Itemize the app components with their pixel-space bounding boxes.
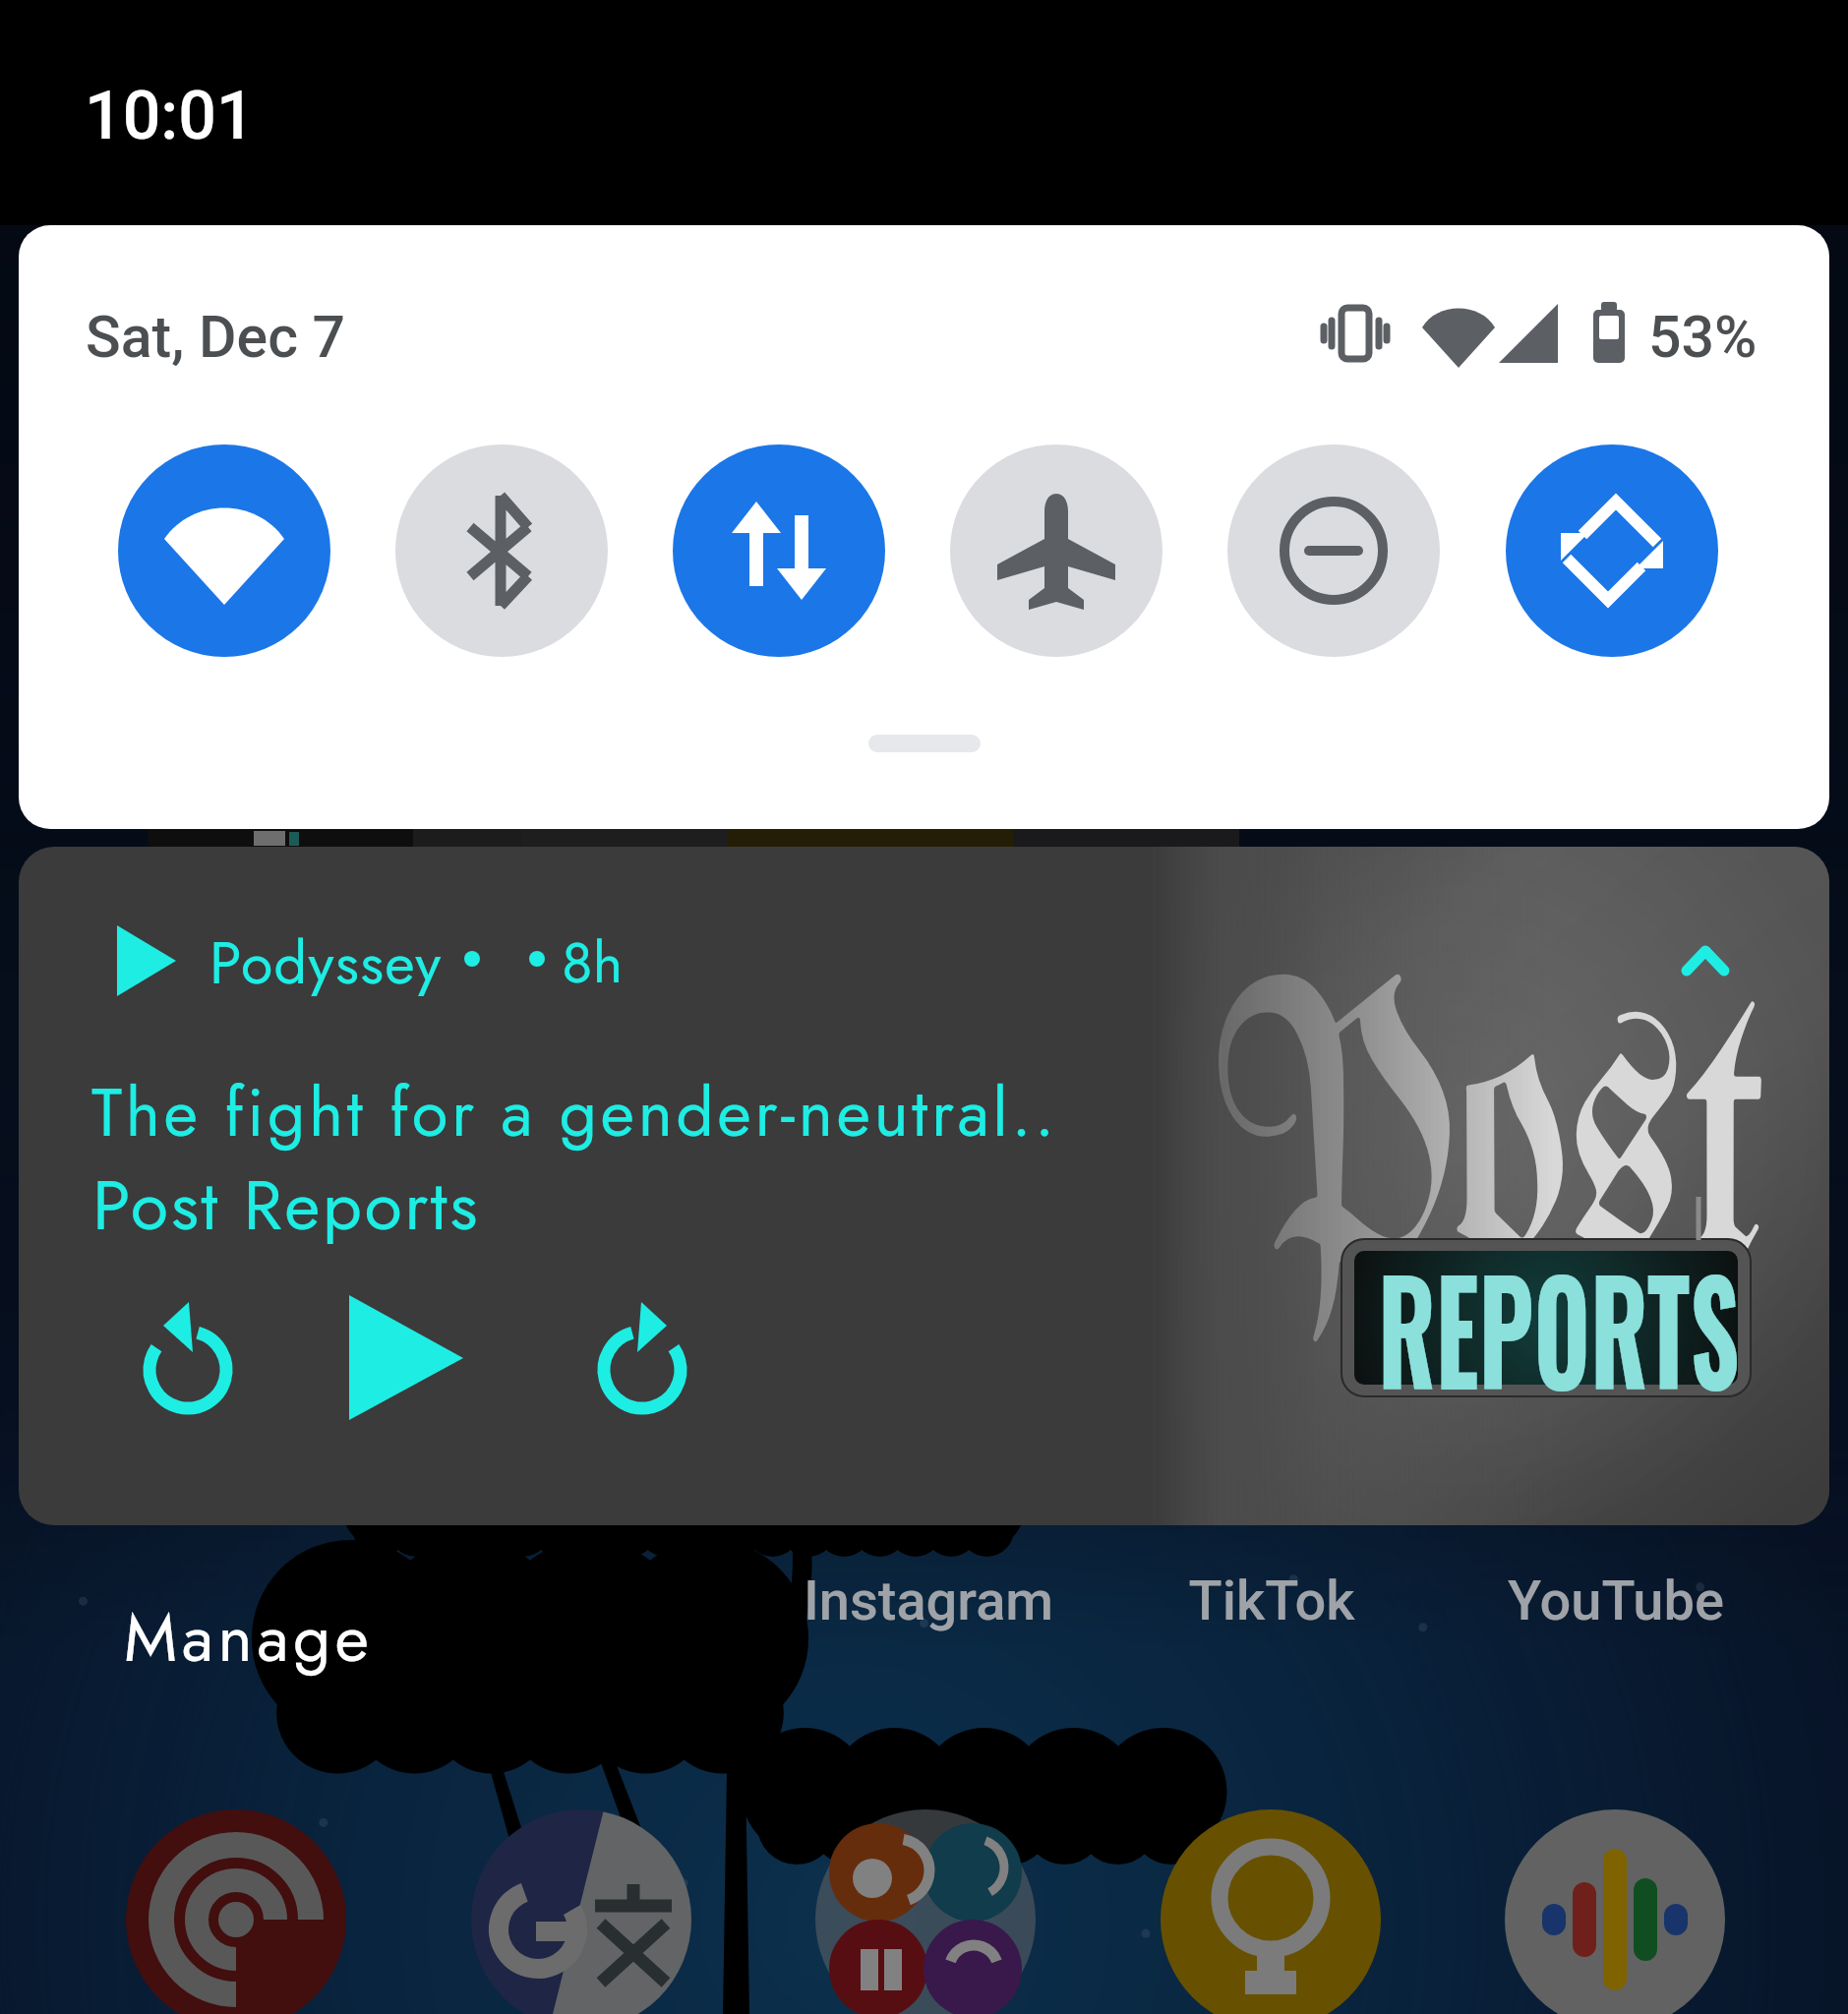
staticText: REPORTS bbox=[1378, 1222, 1740, 1430]
button[interactable]: Collapse notification bbox=[1657, 908, 1752, 1002]
button[interactable]: Instagram bbox=[732, 1569, 1125, 1647]
button[interactable]: Bluetooth bbox=[395, 444, 608, 657]
button[interactable]: YouTube bbox=[1419, 1569, 1813, 1647]
staticText: TikTok bbox=[1075, 1569, 1468, 1633]
button[interactable]: TikTok bbox=[1075, 1569, 1468, 1647]
staticText: The fight for a gender-neutral.. bbox=[91, 1065, 1058, 1160]
button[interactable]: Mobile data bbox=[673, 444, 885, 657]
button[interactable]: Fast forward 30 seconds bbox=[554, 1279, 731, 1456]
staticText: 8h bbox=[562, 921, 624, 1004]
button[interactable]: Auto-rotate bbox=[1506, 444, 1718, 657]
staticText: Post Reports bbox=[92, 1155, 481, 1255]
button[interactable]: Podcast apps folder bbox=[815, 1809, 1036, 2014]
staticText: Instagram bbox=[732, 1569, 1125, 1633]
button[interactable]: Do not disturb bbox=[1227, 444, 1440, 657]
staticText: 53% bbox=[1648, 303, 1758, 371]
staticText: Sat, Dec 7 bbox=[86, 303, 346, 371]
staticText: YouTube bbox=[1419, 1569, 1813, 1633]
button[interactable]: Google Podcasts bbox=[1505, 1809, 1725, 2014]
button[interactable]: Pocket Casts bbox=[126, 1809, 346, 2014]
staticText: Post bbox=[1215, 938, 1767, 1377]
button[interactable]: Rewind 10 seconds bbox=[97, 1279, 274, 1456]
staticText: 10:01 bbox=[85, 77, 255, 155]
button[interactable]: Play bbox=[318, 1279, 495, 1456]
button[interactable]: Expand quick settings bbox=[868, 735, 981, 752]
staticText: Manage bbox=[124, 1590, 374, 1686]
button[interactable]: Google Keep bbox=[1161, 1809, 1381, 2014]
button[interactable]: Wi-Fi bbox=[118, 444, 330, 657]
button[interactable]: Manage bbox=[124, 1590, 374, 1686]
staticText: Podyssey bbox=[209, 921, 443, 1005]
button[interactable]: Google Translate bbox=[471, 1809, 691, 2014]
button[interactable]: Airplane mode bbox=[950, 444, 1162, 657]
button[interactable]: Post bbox=[19, 847, 1829, 1525]
